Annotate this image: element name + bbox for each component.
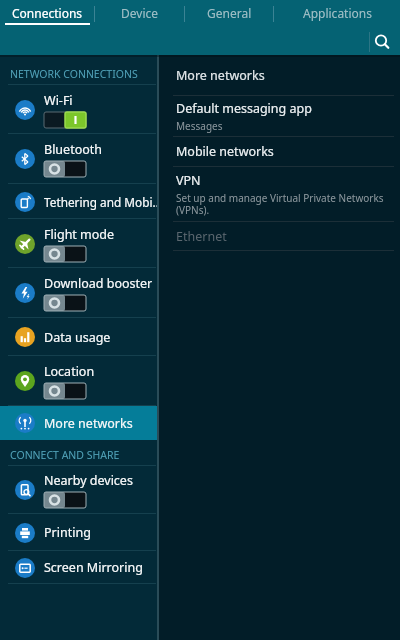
staticText: Download booster: [44, 275, 153, 292]
staticText: Set up and manage Virtual Private Networ…: [176, 191, 384, 217]
staticText: General: [207, 5, 252, 21]
button[interactable]: Connections: [0, 0, 94, 28]
staticText: Printing: [44, 524, 91, 541]
button[interactable]: [44, 383, 86, 399]
staticText: Messages: [176, 119, 223, 133]
button[interactable]: Tethering and Mobi..: [0, 184, 159, 219]
button[interactable]: Applications: [274, 0, 400, 28]
staticText: Device: [121, 5, 159, 21]
button[interactable]: Nearby devices: [0, 466, 159, 514]
staticText: Flight mode: [44, 226, 115, 243]
staticText: Tethering and Mobi..: [44, 194, 159, 210]
button[interactable]: Mobile networks: [159, 137, 400, 166]
button[interactable]: General: [185, 0, 273, 28]
staticText: More networks: [44, 415, 133, 432]
staticText: Ethernet: [176, 228, 227, 245]
staticText: Mobile networks: [176, 143, 274, 160]
button[interactable]: [370, 30, 394, 54]
button[interactable]: Location: [0, 356, 159, 406]
button[interactable]: [44, 112, 86, 128]
staticText: Screen Mirroring: [44, 559, 143, 576]
button[interactable]: Default messaging app: [159, 96, 400, 136]
button[interactable]: [44, 161, 86, 177]
staticText: NETWORK CONNECTIONS: [10, 67, 138, 81]
staticText: Applications: [303, 5, 372, 21]
button[interactable]: Flight mode: [0, 219, 159, 268]
button[interactable]: Device: [95, 0, 184, 28]
staticText: Nearby devices: [44, 472, 133, 489]
staticText: CONNECT AND SHARE: [10, 448, 120, 462]
button[interactable]: Data usage: [0, 318, 159, 356]
button[interactable]: Ethernet: [159, 222, 400, 250]
button[interactable]: [44, 295, 86, 311]
button[interactable]: [44, 246, 86, 262]
button[interactable]: Wi-Fi: [0, 85, 159, 134]
staticText: Bluetooth: [44, 141, 103, 158]
button[interactable]: VPN: [159, 167, 400, 221]
staticText: VPN: [176, 172, 201, 189]
button[interactable]: Bluetooth: [0, 134, 159, 184]
button[interactable]: [44, 492, 86, 508]
staticText: More networks: [176, 67, 265, 84]
staticText: Wi-Fi: [44, 92, 73, 109]
staticText: Connections: [12, 5, 83, 21]
staticText: Default messaging app: [176, 100, 312, 117]
button[interactable]: Printing: [0, 514, 159, 551]
button[interactable]: More networks: [0, 406, 159, 440]
staticText: Data usage: [44, 329, 111, 346]
button[interactable]: Screen Mirroring: [0, 551, 159, 584]
button[interactable]: Download booster: [0, 268, 159, 318]
staticText: Location: [44, 363, 95, 380]
